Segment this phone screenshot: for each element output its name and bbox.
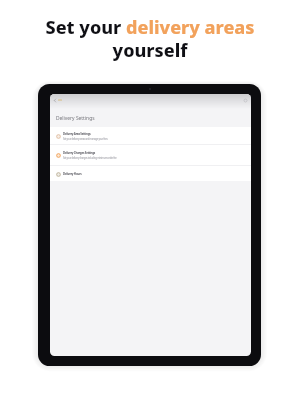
button[interactable]: Delivery Charges Settings (50, 145, 251, 165)
button[interactable]: Profile (242, 97, 248, 103)
staticText: Set your delivery areas and manage your … (63, 137, 108, 140)
button[interactable]: Delivery Area Settings (50, 127, 251, 144)
button[interactable]: Delivery Hours (50, 166, 251, 181)
staticText: Delivery Hours (63, 172, 82, 176)
staticText: Delivery Charges Settings (63, 151, 96, 155)
staticText: Set your delivery charges including mini… (63, 156, 117, 159)
button[interactable]: Back (52, 96, 57, 104)
staticText: Delivery Settings (56, 115, 95, 122)
staticText: Set your delivery areas yourself (0, 15, 300, 63)
staticText: Delivery Area Settings (63, 132, 91, 136)
